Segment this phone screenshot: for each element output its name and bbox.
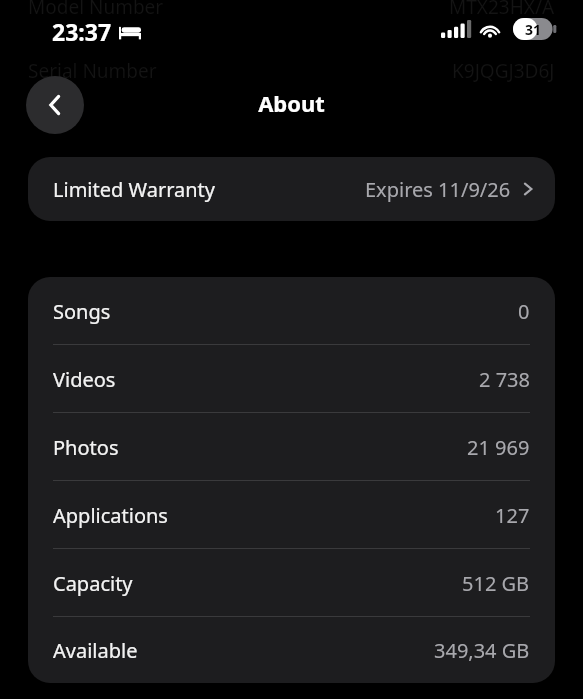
button[interactable]: Photos xyxy=(28,413,555,481)
staticText: 21 969 xyxy=(467,434,530,461)
staticText: 349,34 GB xyxy=(434,637,530,664)
staticText: Photos xyxy=(53,434,119,461)
staticText: Videos xyxy=(53,366,116,393)
button[interactable]: Back xyxy=(26,76,84,134)
staticText: MTX23HX/A xyxy=(449,0,555,20)
staticText: Model Number xyxy=(28,0,164,20)
staticText: Limited Warranty xyxy=(53,176,216,203)
staticText: Songs xyxy=(53,298,111,325)
staticText: 127 xyxy=(495,502,530,529)
staticText: 31 xyxy=(513,20,553,39)
staticText: Serial Number xyxy=(28,58,157,84)
button[interactable]: Available xyxy=(28,617,555,683)
staticText: Capacity xyxy=(53,570,133,597)
staticText: 512 GB xyxy=(462,570,530,597)
staticText: About xyxy=(0,88,583,118)
button[interactable]: Limited Warranty xyxy=(28,157,555,221)
staticText: K9JQGJ3D6J xyxy=(452,58,555,84)
button[interactable]: Applications xyxy=(28,481,555,549)
button[interactable]: Videos xyxy=(28,345,555,413)
staticText: 2 738 xyxy=(479,366,530,393)
staticText: Available xyxy=(53,637,138,664)
staticText: Expires 11/9/26 xyxy=(365,176,511,203)
staticText: 23:37 xyxy=(52,16,112,47)
staticText: Applications xyxy=(53,502,168,529)
button[interactable]: Capacity xyxy=(28,549,555,617)
button[interactable]: Songs xyxy=(28,277,555,345)
staticText: 0 xyxy=(518,298,530,325)
